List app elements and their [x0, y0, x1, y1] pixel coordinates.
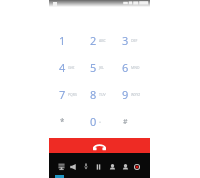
button[interactable]: 4	[52, 54, 83, 81]
staticText: 3	[122, 33, 129, 48]
button[interactable]: Mute	[84, 163, 88, 169]
staticText: 1	[59, 33, 66, 48]
button[interactable]: 1	[52, 27, 83, 54]
staticText: DEF	[131, 38, 138, 43]
staticText: MNO	[131, 65, 140, 70]
button[interactable]: Record	[134, 164, 140, 170]
staticText: JKL	[99, 65, 104, 70]
button[interactable]: Keypad	[58, 163, 65, 170]
staticText: 6	[122, 60, 129, 75]
button[interactable]: 2	[83, 27, 115, 54]
button[interactable]: Add call	[109, 164, 116, 170]
button[interactable]: Merge call	[122, 164, 129, 170]
staticText: 5	[90, 60, 97, 75]
button[interactable]: 8	[83, 81, 115, 108]
button[interactable]: 0	[83, 108, 115, 135]
staticText: 8	[90, 87, 97, 102]
button[interactable]: 9	[115, 81, 147, 108]
staticText: GHI	[68, 65, 75, 70]
staticText: PQRS	[68, 92, 77, 97]
button[interactable]: Speaker	[70, 164, 76, 170]
button[interactable]: *	[52, 108, 83, 135]
staticText: 4	[59, 60, 66, 75]
button[interactable]: 7	[52, 81, 83, 108]
staticText: #	[123, 117, 128, 127]
staticText: 0	[90, 114, 97, 129]
staticText: +	[99, 119, 102, 124]
staticText: ABC	[99, 38, 106, 43]
button[interactable]: #	[115, 108, 147, 135]
button[interactable]: 6	[115, 54, 147, 81]
staticText: *	[60, 116, 65, 127]
button[interactable]: Hold	[96, 164, 101, 170]
staticText: 2	[90, 33, 97, 48]
staticText: 7	[59, 87, 66, 102]
button[interactable]: 5	[83, 54, 115, 81]
staticText: WXYZ	[131, 92, 140, 97]
staticText: TUV	[99, 92, 106, 97]
button[interactable]: 3	[115, 27, 147, 54]
staticText: 9	[122, 87, 129, 102]
button[interactable]: End call	[49, 138, 150, 153]
